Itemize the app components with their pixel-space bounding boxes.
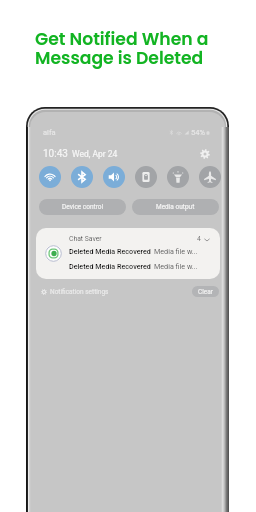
staticText: 4 — [197, 235, 201, 243]
button[interactable]: Media output — [132, 199, 219, 215]
button[interactable]: Auto rotate — [135, 166, 157, 188]
staticText: Media file w... — [154, 247, 198, 255]
staticText: Wed, Apr 24 — [72, 149, 118, 159]
staticText: Device control — [62, 203, 104, 211]
staticText: Deleted Media Recovered — [69, 247, 151, 255]
staticText: Deleted Media Recovered — [69, 262, 151, 270]
button[interactable]: Bluetooth — [71, 166, 93, 188]
staticText: Get Notified When a Message is Deleted — [35, 27, 209, 70]
staticText: Chat Saver — [69, 235, 102, 243]
staticText: Media output — [156, 203, 195, 211]
button[interactable]: Flashlight — [167, 166, 189, 188]
staticText: Media file w... — [154, 262, 198, 270]
staticText: Clear — [198, 288, 213, 296]
button[interactable]: Airplane mode — [199, 166, 221, 188]
button[interactable]: Wi-Fi — [39, 166, 61, 188]
button[interactable]: Clear — [192, 286, 219, 297]
button[interactable]: Settings — [198, 147, 212, 161]
staticText: alfa — [43, 128, 56, 137]
button[interactable]: Sound — [103, 166, 125, 188]
staticText: Notification settings — [50, 288, 109, 296]
staticText: 54% — [191, 128, 205, 137]
button[interactable]: Device control — [39, 199, 126, 215]
staticText: 10:43 — [43, 148, 68, 160]
